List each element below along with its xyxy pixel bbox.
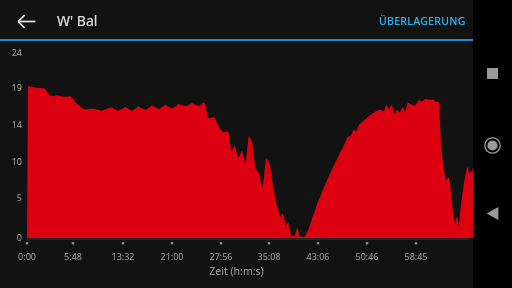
button[interactable]: Startbildschirm <box>473 126 512 165</box>
staticText: 58:45 <box>394 250 438 262</box>
button[interactable]: ÜBERLAGERUNG <box>373 5 472 37</box>
staticText: 10 <box>0 155 22 167</box>
staticText: 50:46 <box>345 250 389 262</box>
button[interactable]: Übersicht <box>473 54 512 93</box>
staticText: 5:48 <box>51 250 95 262</box>
staticText: 14 <box>0 118 22 130</box>
staticText: 19 <box>0 81 22 93</box>
staticText: 35:08 <box>247 250 291 262</box>
staticText: 27:56 <box>199 250 243 262</box>
staticText: Zeit (h:m:s) <box>0 264 473 278</box>
staticText: 5 <box>0 191 22 203</box>
button[interactable]: Zurück <box>6 1 46 41</box>
staticText: 13:32 <box>101 250 145 262</box>
staticText: 0:00 <box>5 250 49 262</box>
button[interactable]: Zurück <box>473 194 512 233</box>
staticText: 24 <box>0 46 22 58</box>
staticText: 0 <box>0 231 22 243</box>
staticText: 21:00 <box>150 250 194 262</box>
staticText: W' Bal <box>57 11 98 30</box>
staticText: 43:06 <box>296 250 340 262</box>
staticText: ÜBERLAGERUNG <box>379 14 466 28</box>
